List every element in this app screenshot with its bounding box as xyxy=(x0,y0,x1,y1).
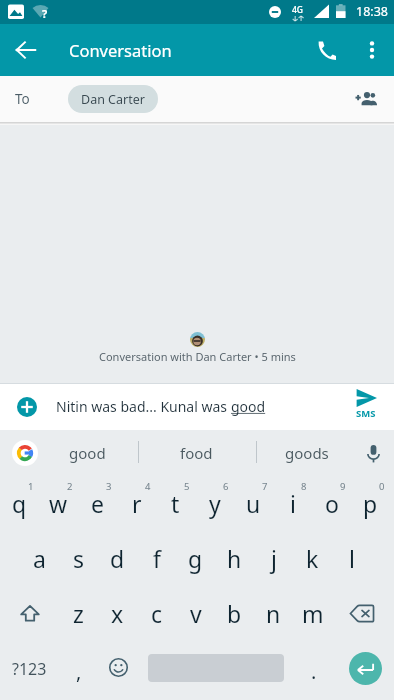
staticText: good xyxy=(69,443,106,463)
button[interactable]: goods xyxy=(257,430,356,476)
button[interactable]: k xyxy=(293,531,332,586)
button[interactable]: good xyxy=(46,430,129,476)
button[interactable]: food xyxy=(139,430,254,476)
button[interactable]: Google Search xyxy=(12,440,38,466)
staticText: u xyxy=(246,488,261,519)
button[interactable]: c xyxy=(137,586,176,641)
staticText: t xyxy=(171,488,180,519)
button[interactable]: Add attachment xyxy=(7,387,47,427)
staticText: d xyxy=(110,543,125,574)
staticText: s xyxy=(73,543,85,574)
staticText: 0 xyxy=(379,480,385,493)
button[interactable]: p xyxy=(351,476,390,531)
staticText: e xyxy=(91,488,104,519)
button[interactable]: Shift xyxy=(0,586,59,641)
staticText: 4 xyxy=(145,480,151,493)
staticText: 6 xyxy=(223,480,229,493)
staticText: n xyxy=(266,598,281,629)
button[interactable]: j xyxy=(254,531,293,586)
staticText: g xyxy=(188,543,203,574)
staticText: ? xyxy=(42,6,48,21)
staticText: q xyxy=(12,488,27,519)
staticText: goods xyxy=(285,443,329,463)
staticText: f xyxy=(153,543,161,574)
button[interactable]: ?123 xyxy=(0,641,59,696)
button[interactable]: n xyxy=(254,586,293,641)
button[interactable]: Backspace xyxy=(332,586,391,641)
staticText: 5 xyxy=(184,480,190,493)
staticText: a xyxy=(33,543,46,574)
staticText: y xyxy=(209,488,221,519)
button[interactable]: Back xyxy=(0,24,52,76)
staticText: , xyxy=(76,658,82,685)
staticText: food xyxy=(180,443,213,463)
staticText: SMS xyxy=(356,407,376,420)
staticText: 7 xyxy=(262,480,268,493)
button[interactable]: Space xyxy=(138,641,294,696)
staticText: ?123 xyxy=(12,658,47,680)
button[interactable]: b xyxy=(215,586,254,641)
staticText: w xyxy=(49,488,68,519)
staticText: o xyxy=(325,488,339,519)
button[interactable]: o xyxy=(312,476,351,531)
button[interactable]: m xyxy=(293,586,332,641)
staticText: i xyxy=(290,488,296,519)
button[interactable]: Dan Carter xyxy=(68,85,158,113)
button[interactable]: Add people xyxy=(345,79,385,119)
button[interactable]: , xyxy=(59,641,98,696)
staticText: m xyxy=(302,598,324,629)
button[interactable]: Voice input xyxy=(355,435,391,471)
staticText: 1 xyxy=(28,480,34,493)
staticText: To xyxy=(15,90,30,108)
button[interactable]: s xyxy=(59,531,98,586)
staticText: 8 xyxy=(301,480,307,493)
staticText: l xyxy=(349,543,355,574)
staticText: k xyxy=(306,543,319,574)
staticText: p xyxy=(363,488,378,519)
button[interactable]: u xyxy=(234,476,273,531)
staticText: 18:38 xyxy=(356,3,388,20)
staticText: . xyxy=(311,658,317,685)
staticText: 4G xyxy=(292,4,304,16)
button[interactable]: a xyxy=(20,531,59,586)
button[interactable]: y xyxy=(195,476,234,531)
staticText: h xyxy=(227,543,242,574)
button[interactable]: v xyxy=(176,586,215,641)
button[interactable]: Emoji xyxy=(98,641,137,696)
staticText: Conversation xyxy=(69,39,172,61)
button[interactable]: More options xyxy=(350,28,394,72)
button[interactable]: e xyxy=(78,476,117,531)
button[interactable]: t xyxy=(156,476,195,531)
button[interactable]: q xyxy=(0,476,39,531)
staticText: c xyxy=(151,598,163,629)
button[interactable]: w xyxy=(39,476,78,531)
staticText: Dan Carter xyxy=(81,91,145,108)
button[interactable]: Send SMS xyxy=(338,389,394,420)
button[interactable]: . xyxy=(294,641,333,696)
button[interactable]: l xyxy=(332,531,371,586)
staticText: 9 xyxy=(340,480,346,493)
staticText: z xyxy=(73,598,84,629)
staticText: j xyxy=(271,543,277,574)
button[interactable]: z xyxy=(59,586,98,641)
button[interactable]: Enter xyxy=(339,641,394,696)
button[interactable]: Call xyxy=(302,26,350,74)
button[interactable]: i xyxy=(273,476,312,531)
button[interactable]: r xyxy=(117,476,156,531)
button[interactable]: x xyxy=(98,586,137,641)
staticText: x xyxy=(111,598,124,629)
button[interactable]: g xyxy=(176,531,215,586)
staticText: r xyxy=(132,488,142,519)
button[interactable]: h xyxy=(215,531,254,586)
staticText: good xyxy=(231,397,266,416)
button[interactable]: f xyxy=(137,531,176,586)
button[interactable]: d xyxy=(98,531,137,586)
staticText: b xyxy=(227,598,242,629)
staticText: Nitin was bad... Kunal was xyxy=(56,397,231,416)
staticText: Conversation with Dan Carter • 5 mins xyxy=(99,349,296,364)
staticText: 3 xyxy=(106,480,112,493)
staticText: 2 xyxy=(67,480,73,493)
staticText: v xyxy=(190,598,202,629)
